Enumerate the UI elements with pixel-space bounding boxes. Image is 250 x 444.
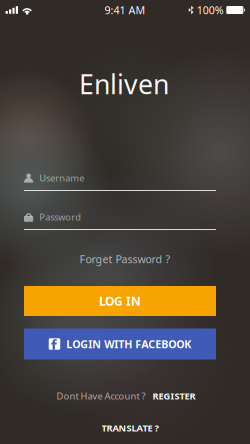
button[interactable]: TRANSLATE ? [90,421,170,435]
staticText: Dont Have Account ? [56,390,145,402]
staticText: LOGIN WITH FACEBOOK [66,337,191,351]
staticText: Forget Password ? [79,252,170,266]
staticText: 100% [197,3,224,17]
staticText: REGISTER [152,390,195,402]
button[interactable]: LOG IN [24,286,216,316]
button[interactable]: Forget Password ? [70,251,180,267]
staticText: LOG IN [99,293,141,309]
staticText: TRANSLATE ? [101,422,158,434]
staticText: Username [39,172,84,184]
button[interactable]: LOGIN WITH FACEBOOK [24,328,216,359]
staticText: Password [39,211,81,223]
staticText: 9:41 AM [104,3,145,17]
button[interactable]: REGISTER [152,390,195,402]
staticText: Enliven [79,66,169,102]
